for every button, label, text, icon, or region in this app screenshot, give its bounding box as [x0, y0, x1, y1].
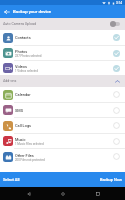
button[interactable]: Backup Now — [62, 172, 125, 187]
staticText: Add-ons — [3, 79, 17, 83]
staticText: 1 Music Files selected — [15, 142, 44, 145]
button[interactable]: Home — [56, 187, 69, 200]
staticText: 1 Videos selected — [15, 69, 38, 72]
button[interactable]: Call Logs — [0, 118, 125, 133]
button[interactable]: Auto Camera Upload — [0, 18, 125, 30]
staticText: Videos — [15, 64, 27, 69]
button[interactable]: Recents — [91, 187, 104, 200]
staticText: 3:14 — [116, 1, 123, 5]
button[interactable]: Select Videos — [112, 64, 121, 73]
staticText: Backup Now — [100, 177, 122, 182]
button[interactable]: Select Music — [112, 137, 121, 146]
staticText: Other Files — [15, 153, 34, 158]
staticText: Auto Camera Upload — [3, 22, 36, 26]
button[interactable]: Photos — [0, 46, 125, 60]
button[interactable]: Back — [0, 5, 13, 18]
staticText: Select All — [3, 177, 20, 182]
staticText: Backup your device — [13, 9, 52, 14]
button[interactable]: SMS — [0, 103, 125, 117]
button[interactable]: Select Other Files — [112, 152, 121, 161]
staticText: 237 Photos selected — [15, 54, 42, 57]
staticText: Call Logs — [15, 123, 32, 128]
staticText: SMS — [15, 108, 24, 113]
button[interactable]: Calendar — [0, 87, 125, 102]
button[interactable]: Other Files — [0, 149, 125, 164]
staticText: Photos — [15, 49, 28, 54]
staticText: Music — [15, 137, 26, 142]
button[interactable]: Select Photos — [112, 49, 121, 58]
button[interactable]: Select Calendar — [112, 90, 121, 99]
button[interactable]: Select Contacts — [112, 33, 121, 42]
button[interactable]: Music — [0, 134, 125, 148]
button[interactable]: Select SMS — [112, 106, 121, 115]
staticText: Calendar — [15, 92, 31, 97]
button[interactable]: Select Call Logs — [112, 121, 121, 130]
button[interactable]: Videos — [0, 61, 125, 75]
staticText: Contacts — [15, 35, 31, 40]
button[interactable]: Add-ons — [0, 75, 125, 87]
staticText: 200 Files not protected — [15, 158, 45, 161]
button[interactable]: Back — [22, 187, 35, 200]
button[interactable]: Select All — [0, 172, 62, 187]
button[interactable]: Contacts — [0, 30, 125, 45]
